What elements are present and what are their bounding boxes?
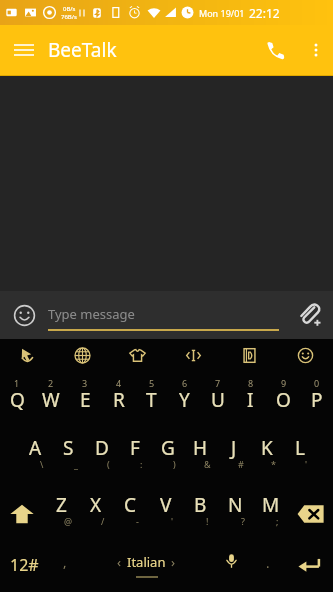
button[interactable]: ,	[48, 542, 81, 588]
staticText: F	[130, 435, 140, 461]
staticText: 8	[248, 377, 254, 389]
button[interactable]: 9	[267, 372, 300, 427]
staticText: M	[262, 492, 280, 518]
button[interactable]: 4	[102, 372, 135, 427]
staticText: ›	[171, 553, 176, 571]
button[interactable]: L	[283, 427, 316, 485]
button[interactable]: N	[218, 485, 253, 542]
staticText: Z	[56, 492, 67, 518]
staticText: BeeTalk	[48, 37, 117, 63]
button[interactable]: Gesture input	[0, 339, 55, 372]
staticText: J	[231, 435, 237, 461]
button[interactable]: Space, Italian	[81, 542, 212, 588]
button[interactable]: Backspace	[288, 485, 333, 542]
staticText: *	[271, 458, 276, 470]
button[interactable]: Language	[55, 339, 110, 372]
button[interactable]: 7	[201, 372, 234, 427]
staticText: P	[311, 387, 323, 413]
staticText: 6	[182, 377, 188, 389]
button[interactable]: A	[18, 427, 52, 485]
staticText: 3	[82, 377, 88, 389]
button[interactable]: Voice input	[212, 542, 251, 588]
staticText: 7	[215, 377, 221, 389]
button[interactable]: J	[217, 427, 250, 485]
button[interactable]: D	[85, 427, 118, 485]
button[interactable]: V	[148, 485, 183, 542]
staticText: 22:12	[249, 5, 280, 21]
button[interactable]: Dictionary	[221, 339, 277, 372]
staticText: R	[113, 387, 125, 413]
button[interactable]: 0	[300, 372, 333, 427]
staticText: A	[29, 435, 42, 461]
button[interactable]: 5	[135, 372, 168, 427]
staticText: 1	[14, 377, 20, 389]
staticText: ?	[241, 515, 245, 527]
button[interactable]: Type message	[48, 299, 279, 329]
button[interactable]: X	[78, 485, 113, 542]
staticText: Italian	[127, 553, 166, 571]
button[interactable]: Emoji	[0, 291, 48, 339]
staticText: -	[136, 515, 139, 527]
button[interactable]: Shift	[0, 485, 44, 542]
staticText: O	[276, 387, 291, 413]
button[interactable]: 8	[234, 372, 267, 427]
button[interactable]: 12#	[0, 542, 48, 588]
staticText: #	[238, 458, 244, 470]
staticText: C	[124, 492, 137, 518]
staticText: .	[266, 554, 270, 572]
staticText: U	[211, 387, 225, 413]
staticText: G	[161, 435, 175, 461]
staticText: N	[228, 492, 243, 518]
button[interactable]: 2	[34, 372, 68, 427]
staticText: \	[40, 458, 44, 470]
button[interactable]: .	[251, 542, 284, 588]
staticText: )	[173, 458, 176, 470]
staticText: (	[107, 458, 110, 470]
staticText: T	[146, 387, 157, 413]
button[interactable]: F	[118, 427, 151, 485]
staticText: 76B/s	[61, 13, 77, 21]
button[interactable]: More options	[299, 26, 333, 74]
button[interactable]: K	[250, 427, 283, 485]
staticText: @	[64, 515, 73, 527]
button[interactable]: Theme	[110, 339, 165, 372]
staticText: &	[204, 458, 211, 470]
staticText: /	[101, 515, 105, 527]
button[interactable]: 3	[68, 372, 102, 427]
staticText: L	[295, 435, 305, 461]
button[interactable]: H	[184, 427, 217, 485]
staticText: ‹	[117, 553, 122, 571]
button[interactable]: M	[253, 485, 288, 542]
staticText: 9	[281, 377, 287, 389]
staticText: !	[206, 515, 209, 527]
staticText: _	[74, 458, 78, 470]
button[interactable]: Cursor control	[165, 339, 221, 372]
button[interactable]: B	[183, 485, 218, 542]
button[interactable]: G	[151, 427, 184, 485]
button[interactable]: Attach file	[285, 291, 333, 339]
staticText: ;	[276, 515, 279, 527]
button[interactable]: Enter	[284, 542, 333, 588]
button[interactable]: S	[52, 427, 85, 485]
button[interactable]: 6	[168, 372, 201, 427]
staticText: Q	[10, 387, 25, 413]
button[interactable]: 1	[0, 372, 34, 427]
button[interactable]: Z	[44, 485, 78, 542]
staticText: 2	[48, 377, 54, 389]
staticText: W	[42, 387, 60, 413]
staticText: E	[80, 387, 91, 413]
staticText: '	[171, 515, 174, 527]
button[interactable]: Open navigation drawer	[0, 26, 48, 74]
button[interactable]: C	[113, 485, 148, 542]
staticText: Y	[179, 387, 190, 413]
staticText: 5	[149, 377, 155, 389]
staticText: 0B/s	[63, 5, 76, 13]
staticText: I	[247, 387, 254, 413]
staticText: V	[160, 492, 172, 518]
button[interactable]: Call	[251, 26, 299, 74]
staticText: B	[194, 492, 207, 518]
staticText: :	[140, 458, 143, 470]
staticText: S	[63, 435, 74, 461]
staticText: Type message	[48, 305, 135, 323]
button[interactable]: Emoji	[277, 339, 333, 372]
